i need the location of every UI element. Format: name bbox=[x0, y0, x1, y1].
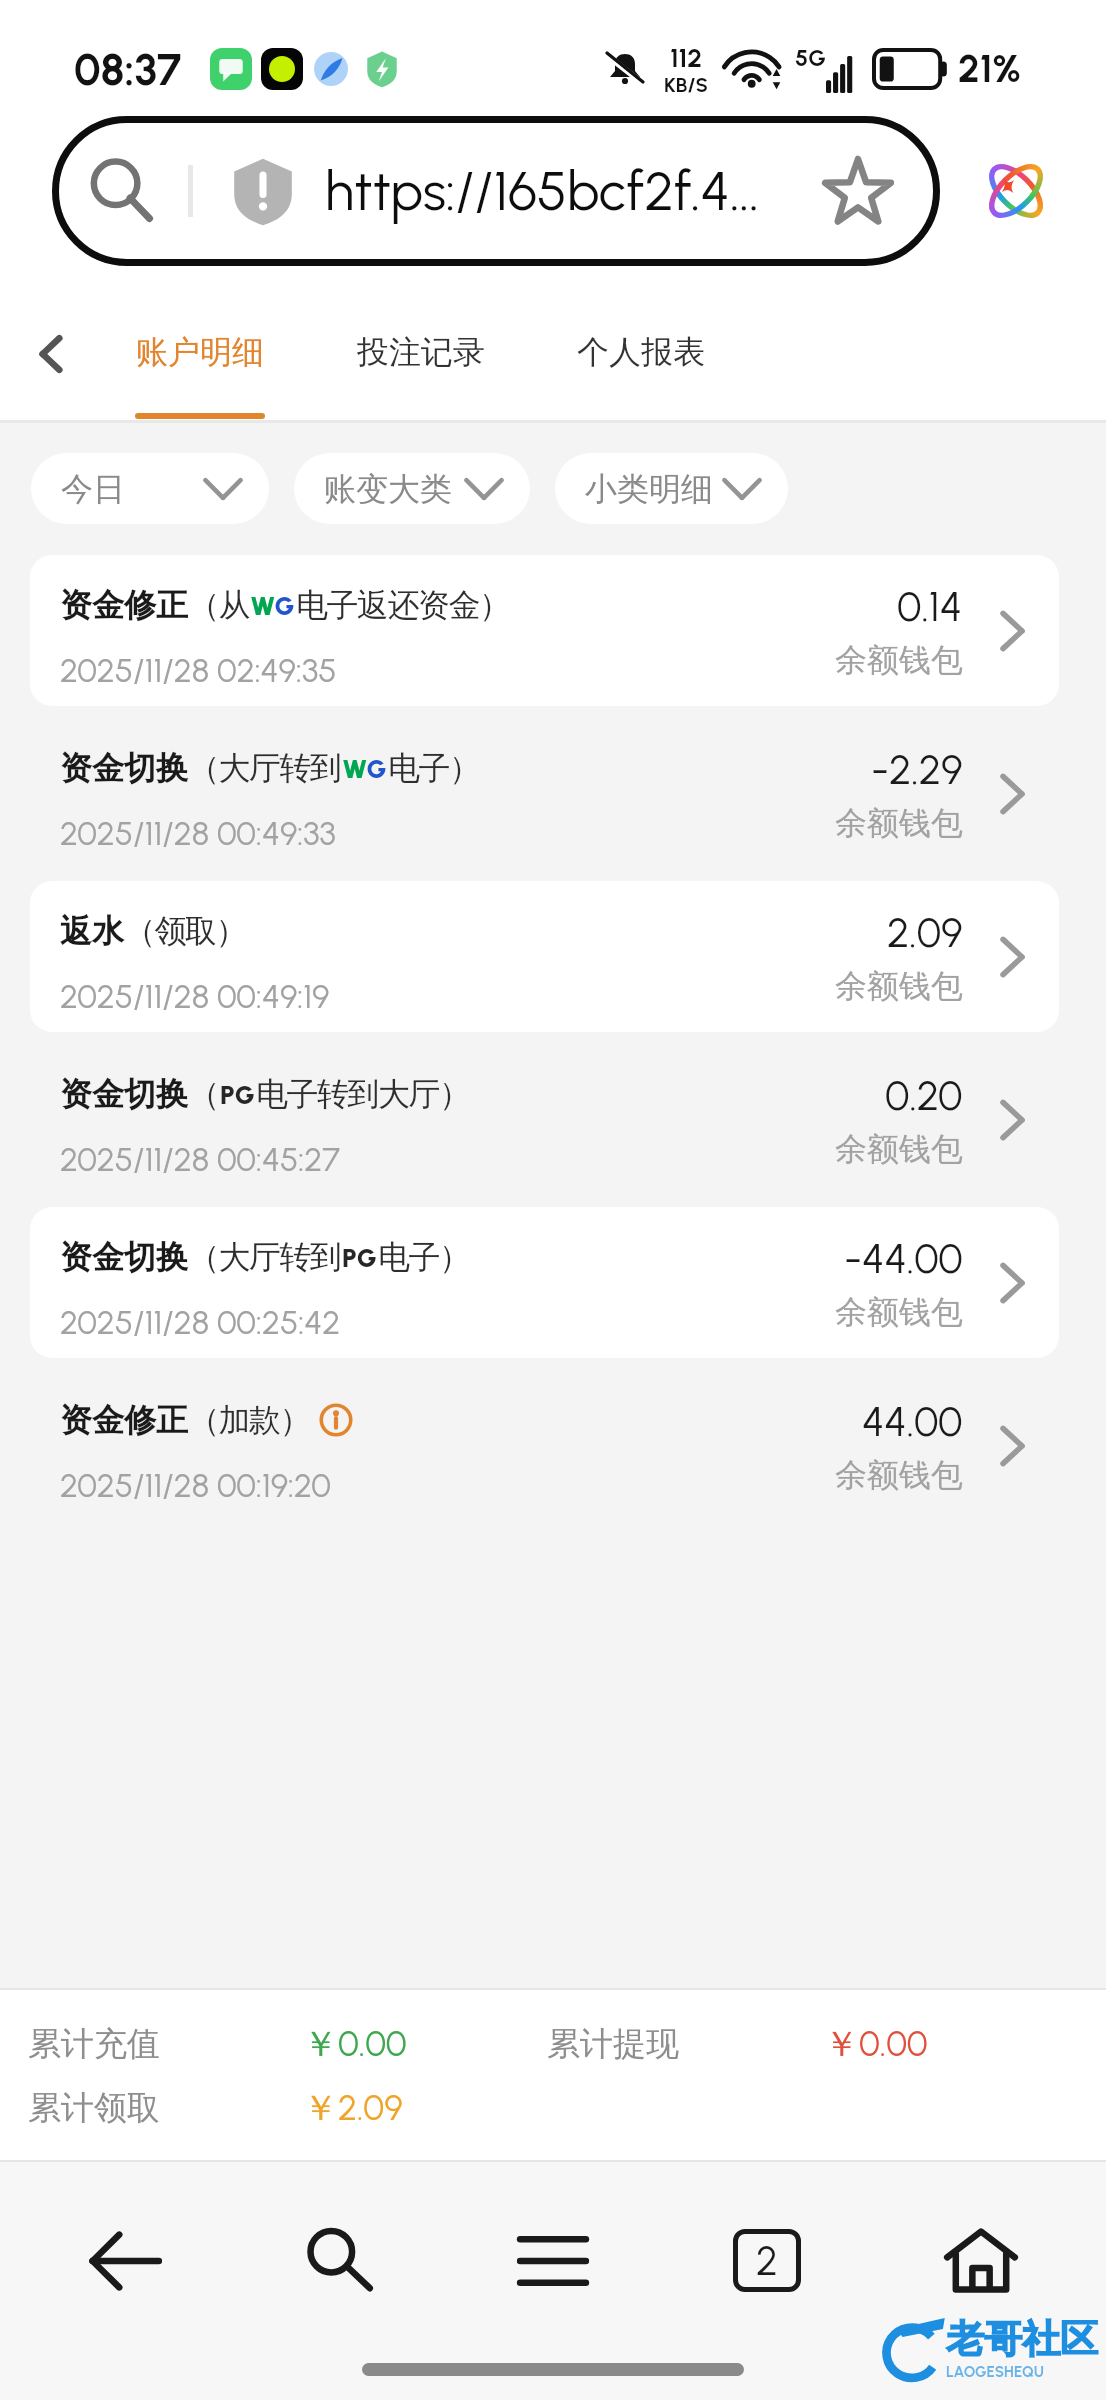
staticText: KB/S bbox=[664, 73, 709, 97]
staticText: -44.00 bbox=[844, 1234, 963, 1283]
staticText: 个人报表 bbox=[577, 332, 705, 372]
button[interactable]: 资金切换（大厅转到 bbox=[30, 718, 1059, 869]
staticText: 累计领取 bbox=[28, 2087, 160, 2129]
staticText: 2025/11/28 00:45:27 bbox=[60, 1140, 340, 1180]
button[interactable]: 今日 bbox=[31, 453, 269, 524]
staticText: 电子转到大厅） bbox=[256, 1074, 470, 1114]
button[interactable]: 投注记录 bbox=[357, 277, 485, 420]
staticText: 返水（领取） bbox=[60, 911, 246, 951]
button[interactable]: 资金切换（大厅转到 bbox=[30, 1207, 1059, 1358]
staticText: 0.14 bbox=[897, 582, 963, 631]
staticText: 2.09 bbox=[887, 908, 963, 957]
button[interactable]: 资金修正（从 bbox=[30, 555, 1059, 706]
button[interactable]: 账户明细 bbox=[135, 277, 265, 420]
staticText: 余额钱包 bbox=[835, 966, 963, 1006]
staticText: 资金切换（大厅转到 bbox=[60, 1237, 341, 1277]
staticText: -2.29 bbox=[871, 745, 963, 794]
staticText: 投注记录 bbox=[357, 332, 485, 372]
staticText: 老哥社区 bbox=[946, 2315, 1098, 2363]
button[interactable]: Browser home bbox=[970, 145, 1062, 237]
staticText: PG bbox=[342, 1242, 377, 1273]
button[interactable]: 账变大类 bbox=[294, 453, 530, 524]
staticText: 余额钱包 bbox=[835, 640, 963, 680]
button[interactable]: Back bbox=[16, 299, 86, 409]
button[interactable]: 返水（领取） bbox=[30, 881, 1059, 1032]
staticText: 资金切换（ bbox=[60, 1074, 219, 1114]
button[interactable]: Tabs bbox=[712, 2229, 822, 2292]
staticText: 小类明细 bbox=[585, 469, 713, 509]
staticText: https://165bcf2f.4... bbox=[325, 159, 760, 224]
staticText: 余额钱包 bbox=[835, 1292, 963, 1332]
staticText: 5G bbox=[795, 44, 826, 72]
staticText: 累计充值 bbox=[28, 2023, 160, 2065]
button[interactable]: 资金修正（加款） bbox=[30, 1370, 1059, 1521]
staticText: 电子返还资金） bbox=[296, 585, 510, 625]
button[interactable]: 资金切换（ bbox=[30, 1044, 1059, 1195]
staticText: 账户明细 bbox=[136, 332, 264, 372]
staticText: 2025/11/28 00:19:20 bbox=[60, 1466, 331, 1506]
staticText: 资金切换（大厅转到 bbox=[60, 748, 341, 788]
staticText: 资金修正（加款） bbox=[60, 1400, 310, 1440]
staticText: 08:37 bbox=[74, 43, 182, 96]
staticText: 2 bbox=[756, 2237, 778, 2285]
staticText: 余额钱包 bbox=[835, 1129, 963, 1169]
staticText: 资金修正（从 bbox=[60, 585, 249, 625]
staticText: 2025/11/28 02:49:35 bbox=[60, 651, 337, 691]
staticText: 2025/11/28 00:49:33 bbox=[60, 814, 336, 854]
staticText: 今日 bbox=[61, 469, 125, 509]
staticText: LAOGESHEQU bbox=[946, 2363, 1044, 2381]
staticText: 累计提现 bbox=[547, 2023, 679, 2065]
staticText: 2025/11/28 00:25:42 bbox=[60, 1303, 341, 1343]
button[interactable]: https://165bcf2f.4... bbox=[52, 116, 940, 266]
button[interactable]: 小类明细 bbox=[555, 453, 788, 524]
staticText: WG bbox=[250, 590, 295, 621]
button[interactable]: 个人报表 bbox=[577, 277, 705, 420]
button[interactable]: Search bbox=[284, 2229, 394, 2292]
staticText: 电子） bbox=[378, 1237, 470, 1277]
staticText: 44.00 bbox=[862, 1397, 963, 1446]
button[interactable]: Menu bbox=[498, 2229, 608, 2292]
staticText: 112 bbox=[670, 42, 703, 73]
staticText: 余额钱包 bbox=[835, 803, 963, 843]
staticText: 账变大类 bbox=[324, 469, 452, 509]
staticText: ￥0.00 bbox=[824, 2022, 928, 2066]
staticText: 0.20 bbox=[885, 1071, 963, 1120]
button[interactable]: Back bbox=[70, 2229, 180, 2292]
staticText: 电子） bbox=[388, 748, 480, 788]
staticText: 2025/11/28 00:49:19 bbox=[60, 977, 330, 1017]
staticText: PG bbox=[220, 1079, 255, 1110]
staticText: ￥2.09 bbox=[303, 2086, 403, 2130]
staticText: ￥0.00 bbox=[303, 2022, 407, 2066]
staticText: WG bbox=[342, 753, 387, 784]
staticText: 21% bbox=[958, 46, 1021, 92]
staticText: 余额钱包 bbox=[835, 1455, 963, 1495]
button[interactable]: Home bbox=[926, 2229, 1036, 2292]
